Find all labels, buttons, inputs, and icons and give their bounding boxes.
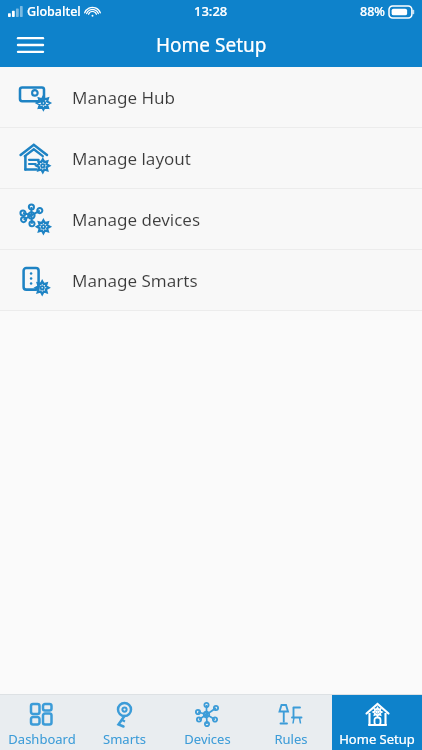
- staticText: Rules: [274, 730, 308, 748]
- staticText: 13:28: [194, 2, 228, 20]
- button[interactable]: Manage Hub: [0, 67, 422, 127]
- button[interactable]: Manage devices: [0, 189, 422, 249]
- button[interactable]: Rules: [249, 695, 332, 750]
- staticText: Manage layout: [72, 147, 191, 170]
- button[interactable]: Menu: [8, 23, 52, 67]
- staticText: Globaltel: [27, 3, 81, 20]
- button[interactable]: Home Setup: [332, 695, 422, 750]
- staticText: Smarts: [103, 730, 146, 748]
- staticText: Manage devices: [72, 208, 201, 231]
- button[interactable]: Smarts: [83, 695, 166, 750]
- staticText: Home Setup: [156, 32, 267, 58]
- staticText: Dashboard: [8, 730, 76, 748]
- button[interactable]: Devices: [166, 695, 249, 750]
- button[interactable]: Manage layout: [0, 128, 422, 188]
- staticText: 88%: [360, 3, 385, 20]
- button[interactable]: Manage Smarts: [0, 250, 422, 310]
- staticText: Manage Smarts: [72, 269, 198, 292]
- staticText: Manage Hub: [72, 86, 176, 109]
- staticText: Devices: [184, 730, 231, 748]
- button[interactable]: Dashboard: [0, 695, 83, 750]
- staticText: Home Setup: [339, 730, 415, 748]
